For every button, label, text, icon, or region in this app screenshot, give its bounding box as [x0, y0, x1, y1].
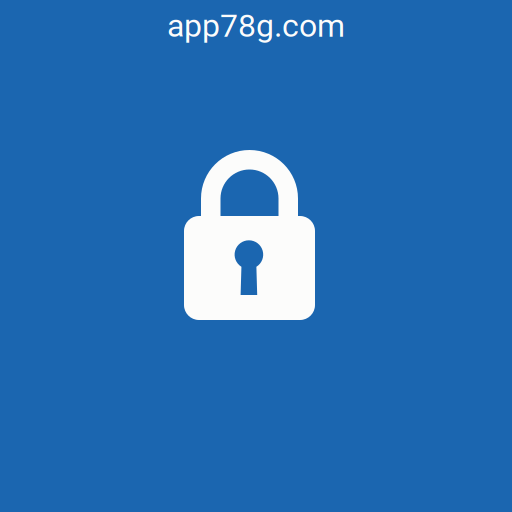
staticText: app78g.com	[167, 7, 345, 44]
